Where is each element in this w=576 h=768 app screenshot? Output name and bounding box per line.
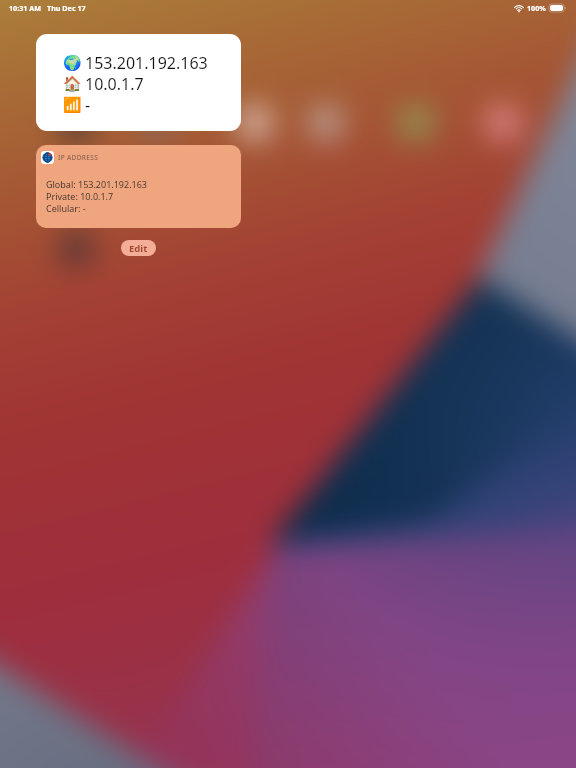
staticText: Global: 153.201.192.163 <box>46 178 147 190</box>
button[interactable]: IP address widget <box>36 34 241 131</box>
staticText: 153.201.192.163 <box>85 52 208 73</box>
staticText: 🌍 <box>63 54 82 72</box>
staticText: IP ADDRESS <box>58 153 99 162</box>
staticText: 100% <box>527 3 546 13</box>
staticText: - <box>85 94 91 115</box>
button[interactable]: IP address details widget <box>36 145 241 228</box>
staticText: Thu Dec 17 <box>47 3 86 13</box>
staticText: 📶 <box>63 96 82 114</box>
staticText: 10.0.1.7 <box>85 73 144 94</box>
staticText: Edit <box>129 242 148 255</box>
staticText: Private: 10.0.1.7 <box>46 190 114 202</box>
other: Wi-Fi <box>514 4 524 12</box>
staticText: 🏠 <box>63 75 82 93</box>
staticText: 10:31 AM <box>9 3 42 13</box>
button[interactable]: Edit <box>121 240 156 256</box>
other: Battery full <box>549 4 566 12</box>
staticText: Cellular: - <box>46 202 86 214</box>
